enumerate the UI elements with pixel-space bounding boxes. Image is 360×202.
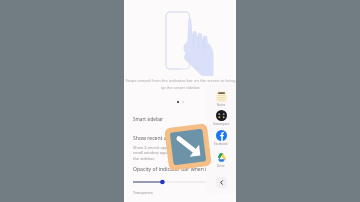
button[interactable]: Drive <box>206 152 236 168</box>
button[interactable]: Smart sidebar <box>124 110 236 128</box>
staticText: Transparent <box>133 190 153 195</box>
staticText: Swipe inward from the indicator bar on t… <box>125 78 236 90</box>
staticText: Drive <box>217 164 225 168</box>
staticText: Facebook <box>214 142 228 146</box>
button[interactable]: Gamespace <box>206 110 236 126</box>
button[interactable]: Back <box>216 177 227 188</box>
staticText: Smart sidebar <box>133 116 164 122</box>
button[interactable]: Show recent apps <box>124 133 236 164</box>
staticText: Opacity of indicator bar when idle <box>133 166 214 173</box>
button[interactable]: Facebook <box>206 130 236 146</box>
staticText: Gamespace <box>213 122 230 126</box>
button[interactable]: Notes <box>206 91 236 107</box>
staticText: Notes <box>217 103 226 107</box>
staticText: Show recent apps <box>133 135 176 142</box>
staticText: Show 2 recent apps and small window apps… <box>133 145 178 162</box>
